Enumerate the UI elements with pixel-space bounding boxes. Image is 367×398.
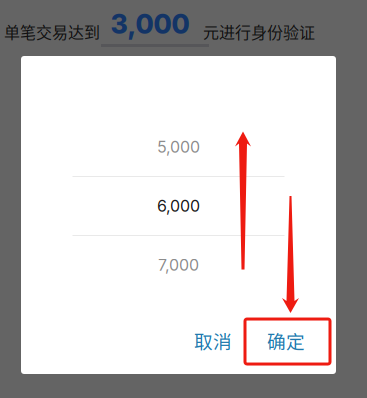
button[interactable]: 取消 — [174, 318, 252, 363]
staticText: 5,000 — [157, 137, 200, 157]
button[interactable]: 确定 — [243, 318, 328, 363]
staticText: 取消 — [194, 327, 232, 354]
staticText: 单笔交易达到 — [4, 20, 100, 43]
staticText: 7,000 — [158, 255, 199, 275]
staticText: 6,000 — [157, 196, 200, 216]
staticText: 元进行身份验证 — [203, 20, 315, 43]
staticText: 确定 — [267, 327, 305, 354]
staticText: 3,000 — [110, 8, 189, 40]
